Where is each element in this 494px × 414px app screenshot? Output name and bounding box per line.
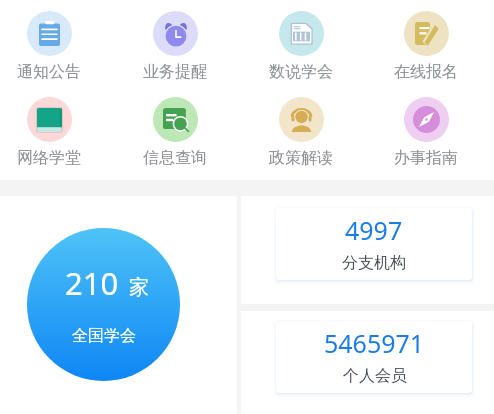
button[interactable]: 业务提醒	[112, 11, 238, 86]
staticText: 全国学会	[72, 326, 136, 346]
staticText: 网络学堂	[17, 148, 81, 168]
staticText: 分支机构	[342, 253, 406, 273]
staticText: 在线报名	[394, 62, 458, 82]
button[interactable]: 4997	[276, 208, 472, 280]
staticText: 数说学会	[269, 62, 333, 82]
staticText: 个人会员	[343, 366, 407, 386]
button[interactable]: 网络学堂	[0, 97, 112, 172]
staticText: 通知公告	[17, 62, 81, 82]
staticText: 信息查询	[143, 148, 207, 168]
button[interactable]: 5465971	[276, 321, 472, 393]
button[interactable]: 210	[27, 228, 180, 381]
button[interactable]: 信息查询	[112, 97, 238, 172]
button[interactable]: 数说学会	[238, 11, 364, 86]
button[interactable]: 政策解读	[238, 97, 364, 172]
staticText: 家	[129, 275, 149, 300]
staticText: 5465971	[324, 326, 425, 360]
staticText: 210	[65, 262, 119, 304]
staticText: 办事指南	[394, 148, 458, 168]
button[interactable]: 在线报名	[363, 11, 489, 86]
staticText: 政策解读	[269, 148, 333, 168]
staticText: 业务提醒	[143, 62, 207, 82]
button[interactable]: 办事指南	[363, 97, 489, 172]
button[interactable]: 通知公告	[0, 11, 112, 86]
staticText: 4997	[345, 213, 403, 247]
